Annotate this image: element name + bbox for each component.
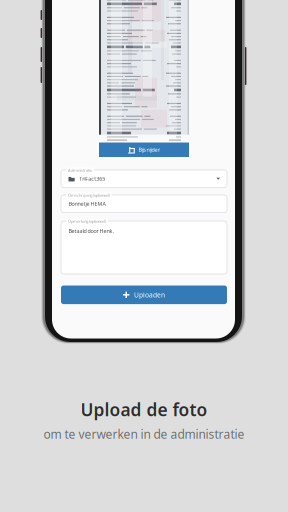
button[interactable]: Uploaden [61, 285, 227, 304]
button[interactable]: Bijsnijden [99, 142, 189, 157]
staticText: Upload de foto [80, 398, 207, 421]
staticText: Opmerking (optioneel) [68, 219, 106, 224]
staticText: Betaald door Henk. [68, 227, 113, 235]
staticText: Administratie [68, 168, 92, 173]
staticText: Bijsnijden [138, 146, 160, 153]
staticText: Bonnetje HEMA [68, 200, 105, 207]
staticText: om te verwerken in de administratie [43, 426, 244, 442]
staticText: Omschrijving (optioneel) [68, 193, 110, 198]
staticText: TriFact365 [79, 175, 105, 182]
staticText: Uploaden [134, 290, 165, 299]
